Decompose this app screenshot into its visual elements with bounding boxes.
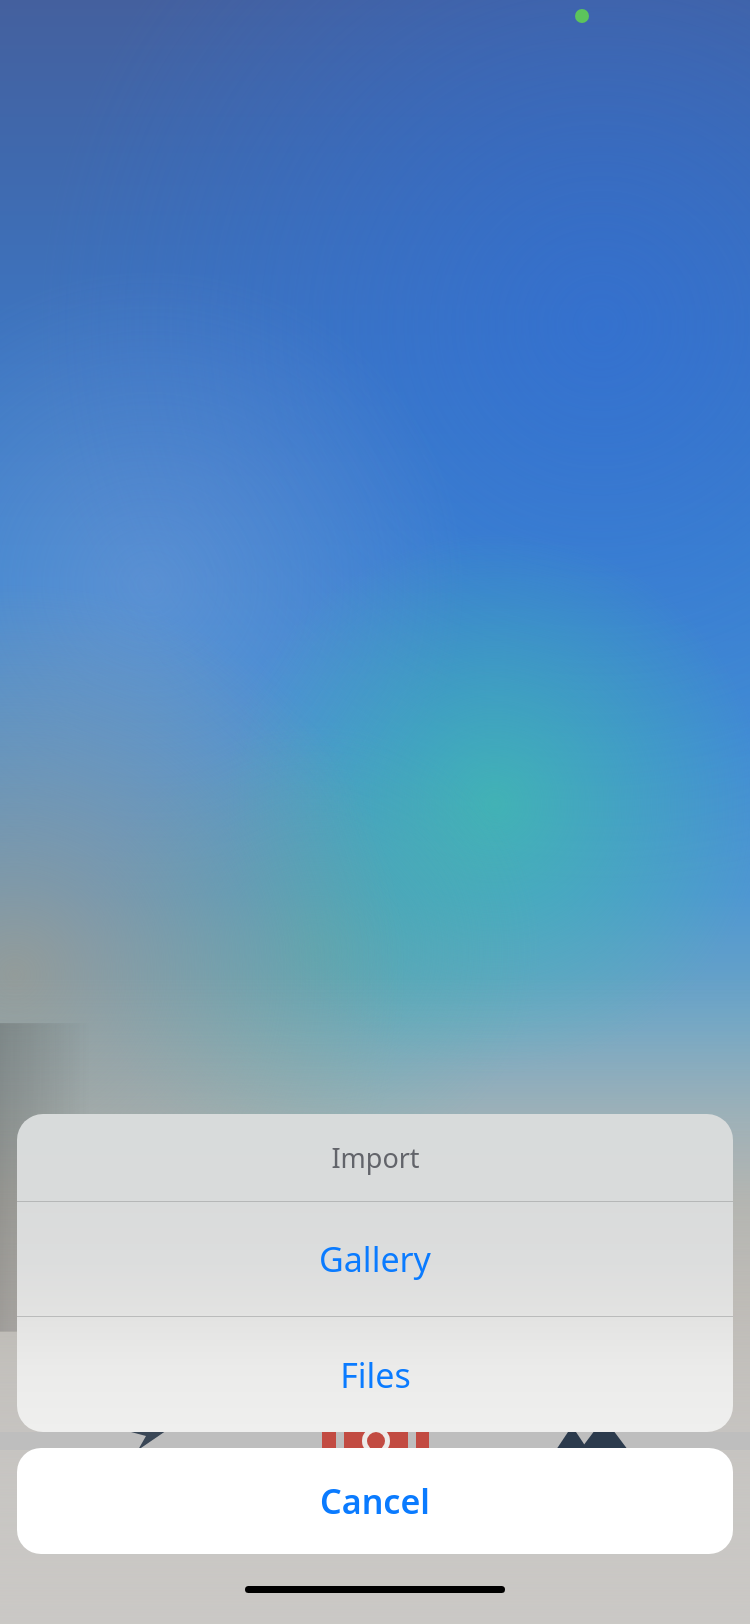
staticText: Import	[331, 1139, 420, 1176]
staticText: Gallery	[319, 1236, 431, 1282]
button[interactable]: Gallery	[17, 1202, 733, 1316]
button[interactable]: Files	[17, 1317, 733, 1432]
staticText: Files	[340, 1352, 411, 1398]
button[interactable]: Cancel	[17, 1448, 733, 1554]
staticText: Cancel	[320, 1478, 430, 1524]
